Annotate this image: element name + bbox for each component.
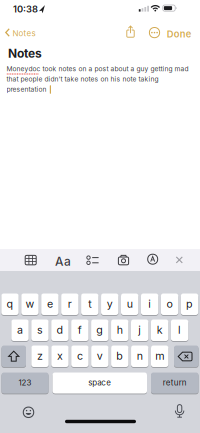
- staticText: q: [6, 297, 13, 310]
- staticText: 10:38: [13, 3, 38, 14]
- staticText: y: [107, 297, 113, 310]
- staticText: b: [116, 349, 123, 362]
- staticText: g: [96, 323, 103, 336]
- staticText: presentation: [6, 85, 46, 93]
- staticText: Notes: [12, 29, 35, 38]
- staticText: f: [78, 323, 82, 336]
- staticText: t: [88, 297, 91, 310]
- staticText: u: [127, 297, 133, 310]
- staticText: d: [56, 323, 63, 336]
- staticText: a: [17, 323, 23, 336]
- staticText: l: [178, 323, 181, 336]
- staticText: Done: [167, 29, 192, 40]
- staticText: n: [137, 349, 143, 362]
- staticText: Aa: [55, 254, 71, 268]
- staticText: o: [167, 297, 173, 310]
- staticText: c: [77, 349, 83, 362]
- staticText: i: [148, 297, 151, 310]
- staticText: x: [57, 349, 63, 362]
- staticText: Notes: [8, 46, 42, 60]
- staticText: that people didn't take notes on his not…: [6, 75, 158, 83]
- staticText: 123: [18, 378, 31, 387]
- staticText: p: [186, 297, 193, 310]
- staticText: e: [47, 297, 53, 310]
- staticText: j: [138, 323, 141, 336]
- staticText: h: [117, 323, 123, 336]
- staticText: r: [68, 297, 72, 310]
- staticText: s: [37, 323, 43, 336]
- staticText: space: [88, 378, 111, 387]
- staticText: z: [37, 349, 43, 362]
- staticText: k: [157, 323, 163, 336]
- staticText: return: [163, 378, 187, 387]
- staticText: m: [155, 349, 164, 362]
- staticText: Moneydoc took notes on a post about a gu…: [6, 65, 188, 73]
- staticText: w: [25, 297, 34, 310]
- staticText: v: [97, 349, 103, 362]
